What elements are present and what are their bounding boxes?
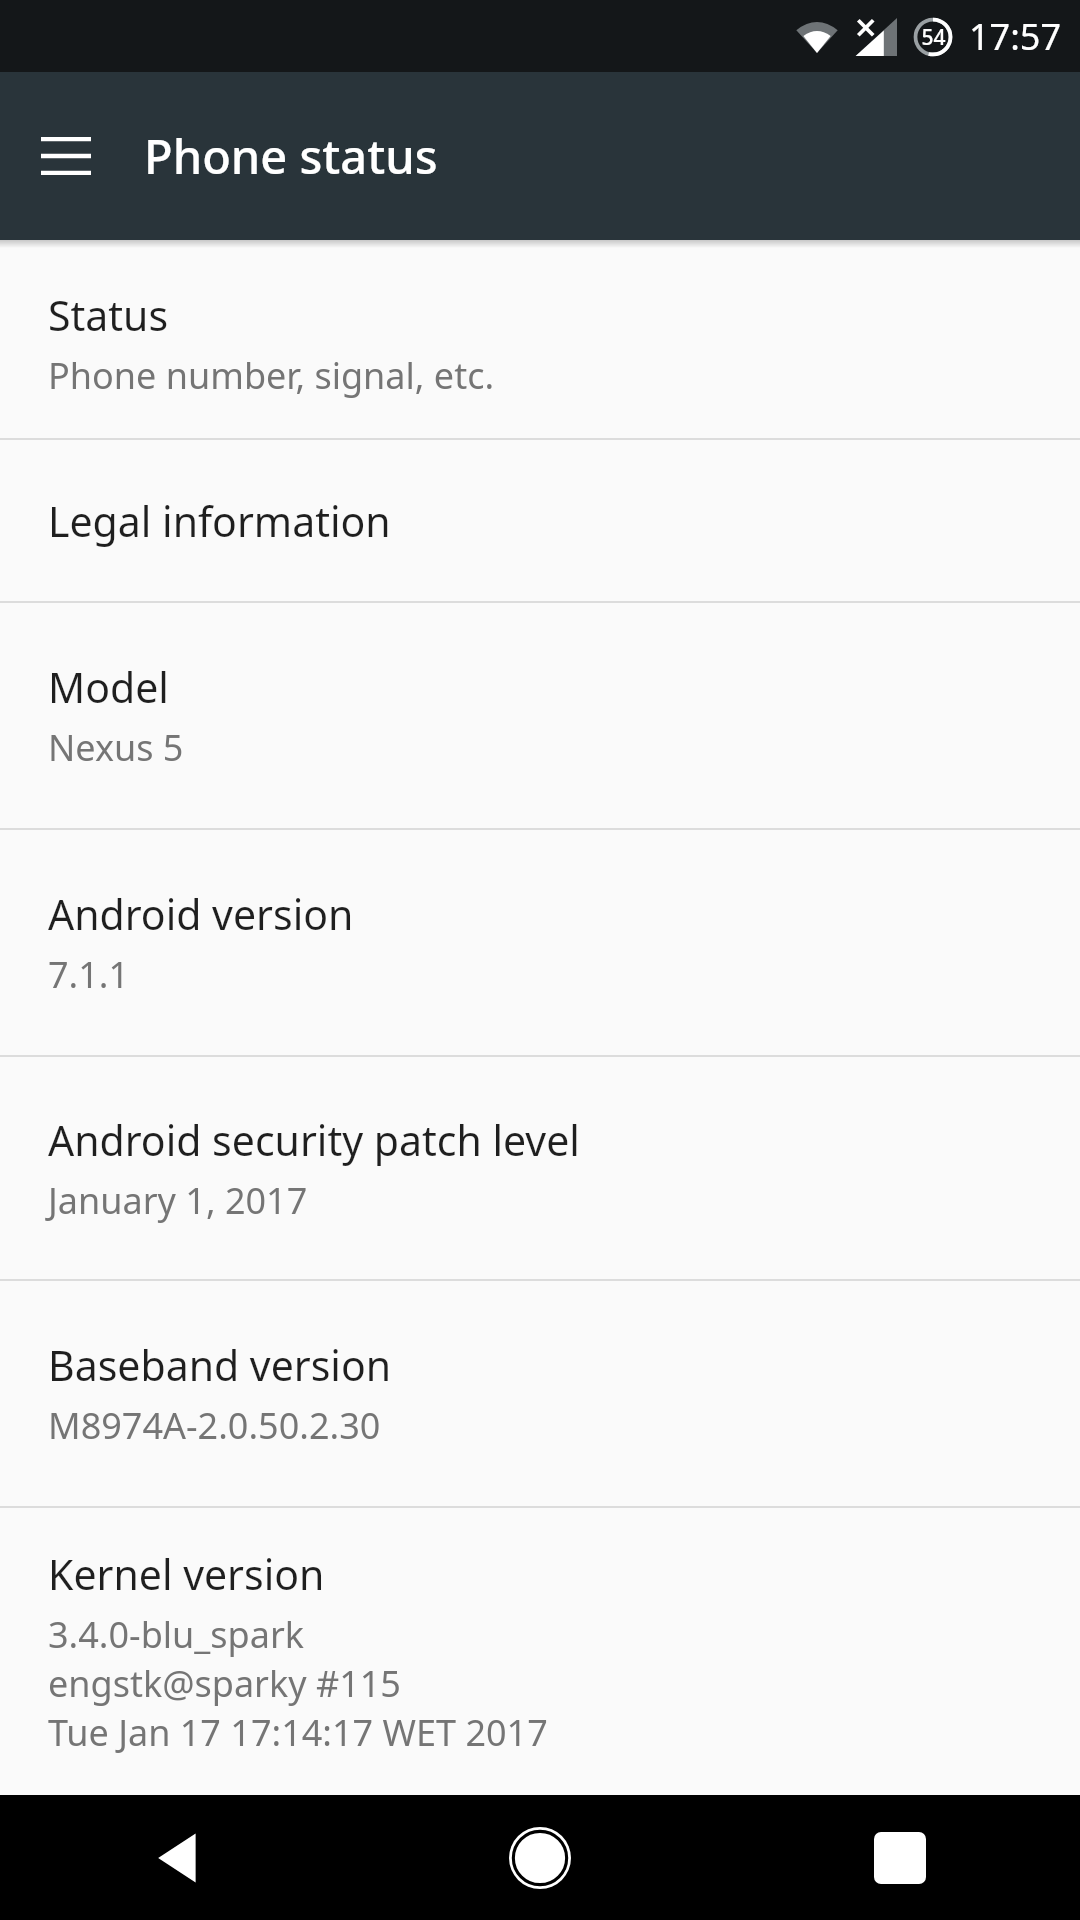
- staticText: M8974A-2.0.50.2.30: [48, 1401, 381, 1450]
- button[interactable]: Legal information: [0, 440, 1080, 601]
- staticText: Tue Jan 17 17:14:17 WET 2017: [48, 1708, 548, 1757]
- button[interactable]: Android version: [0, 830, 1080, 1055]
- staticText: Status: [48, 287, 169, 343]
- staticText: Android security patch level: [48, 1112, 580, 1168]
- staticText: Phone status: [144, 124, 438, 188]
- staticText: Baseband version: [48, 1337, 392, 1393]
- staticText: Nexus 5: [48, 723, 184, 772]
- button[interactable]: Android security patch level: [0, 1057, 1080, 1279]
- staticText: engstk@sparky #115: [48, 1659, 401, 1708]
- button[interactable]: Open navigation drawer: [24, 114, 108, 198]
- button[interactable]: Status: [0, 248, 1080, 438]
- staticText: 7.1.1: [48, 950, 130, 999]
- staticText: 54: [921, 23, 946, 52]
- button[interactable]: Baseband version: [0, 1281, 1080, 1506]
- button[interactable]: Recent apps: [720, 1795, 1080, 1920]
- button[interactable]: Home: [360, 1795, 720, 1920]
- staticText: 17:57: [969, 12, 1062, 61]
- staticText: Legal information: [48, 493, 391, 549]
- staticText: Model: [48, 659, 169, 715]
- staticText: Kernel version: [48, 1546, 325, 1602]
- button[interactable]: Back: [0, 1795, 360, 1920]
- staticText: January 1, 2017: [48, 1176, 308, 1225]
- button[interactable]: Kernel version: [0, 1508, 1080, 1795]
- button[interactable]: Model: [0, 603, 1080, 828]
- staticText: Phone number, signal, etc.: [48, 351, 495, 400]
- staticText: Android version: [48, 886, 354, 942]
- staticText: 3.4.0-blu_spark: [48, 1610, 304, 1659]
